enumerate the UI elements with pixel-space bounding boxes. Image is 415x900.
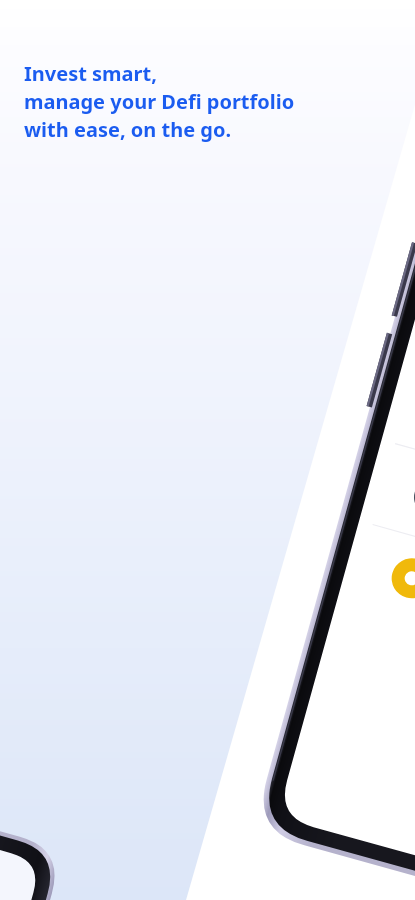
- button[interactable]: Invest smart, manage your Defi portfolio…: [24, 60, 303, 143]
- staticText: Invest smart, manage your Defi portfolio…: [24, 60, 295, 143]
